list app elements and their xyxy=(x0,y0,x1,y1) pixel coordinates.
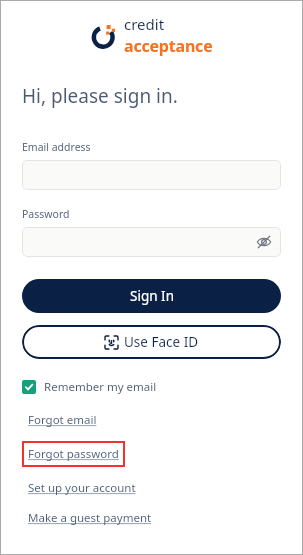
staticText: Email address xyxy=(22,140,91,154)
staticText: acceptance xyxy=(124,35,213,57)
button[interactable]: Make a guest payment xyxy=(22,509,158,527)
staticText: Forgot password xyxy=(28,446,119,462)
staticText: Password xyxy=(22,207,70,221)
button[interactable] xyxy=(22,160,281,190)
button[interactable]: Forgot email xyxy=(22,411,103,429)
staticText: Use Face ID xyxy=(124,333,199,351)
staticText: Remember my email xyxy=(44,379,157,395)
staticText: Forgot email xyxy=(28,412,97,428)
staticText: Make a guest payment xyxy=(28,510,152,526)
button[interactable]: Set up your account xyxy=(22,479,142,497)
button[interactable]: Use Face ID xyxy=(22,325,281,359)
staticText: Hi, please sign in. xyxy=(22,83,178,109)
staticText: credit xyxy=(124,14,165,34)
staticText: Set up your account xyxy=(28,480,136,496)
staticText: Sign In xyxy=(130,287,174,305)
button[interactable]: Forgot password xyxy=(22,441,125,467)
button[interactable]: Remember my email xyxy=(22,377,157,397)
button[interactable]: Show password xyxy=(22,227,281,257)
button[interactable]: Show password xyxy=(255,233,273,251)
button[interactable]: Sign In xyxy=(22,279,281,313)
